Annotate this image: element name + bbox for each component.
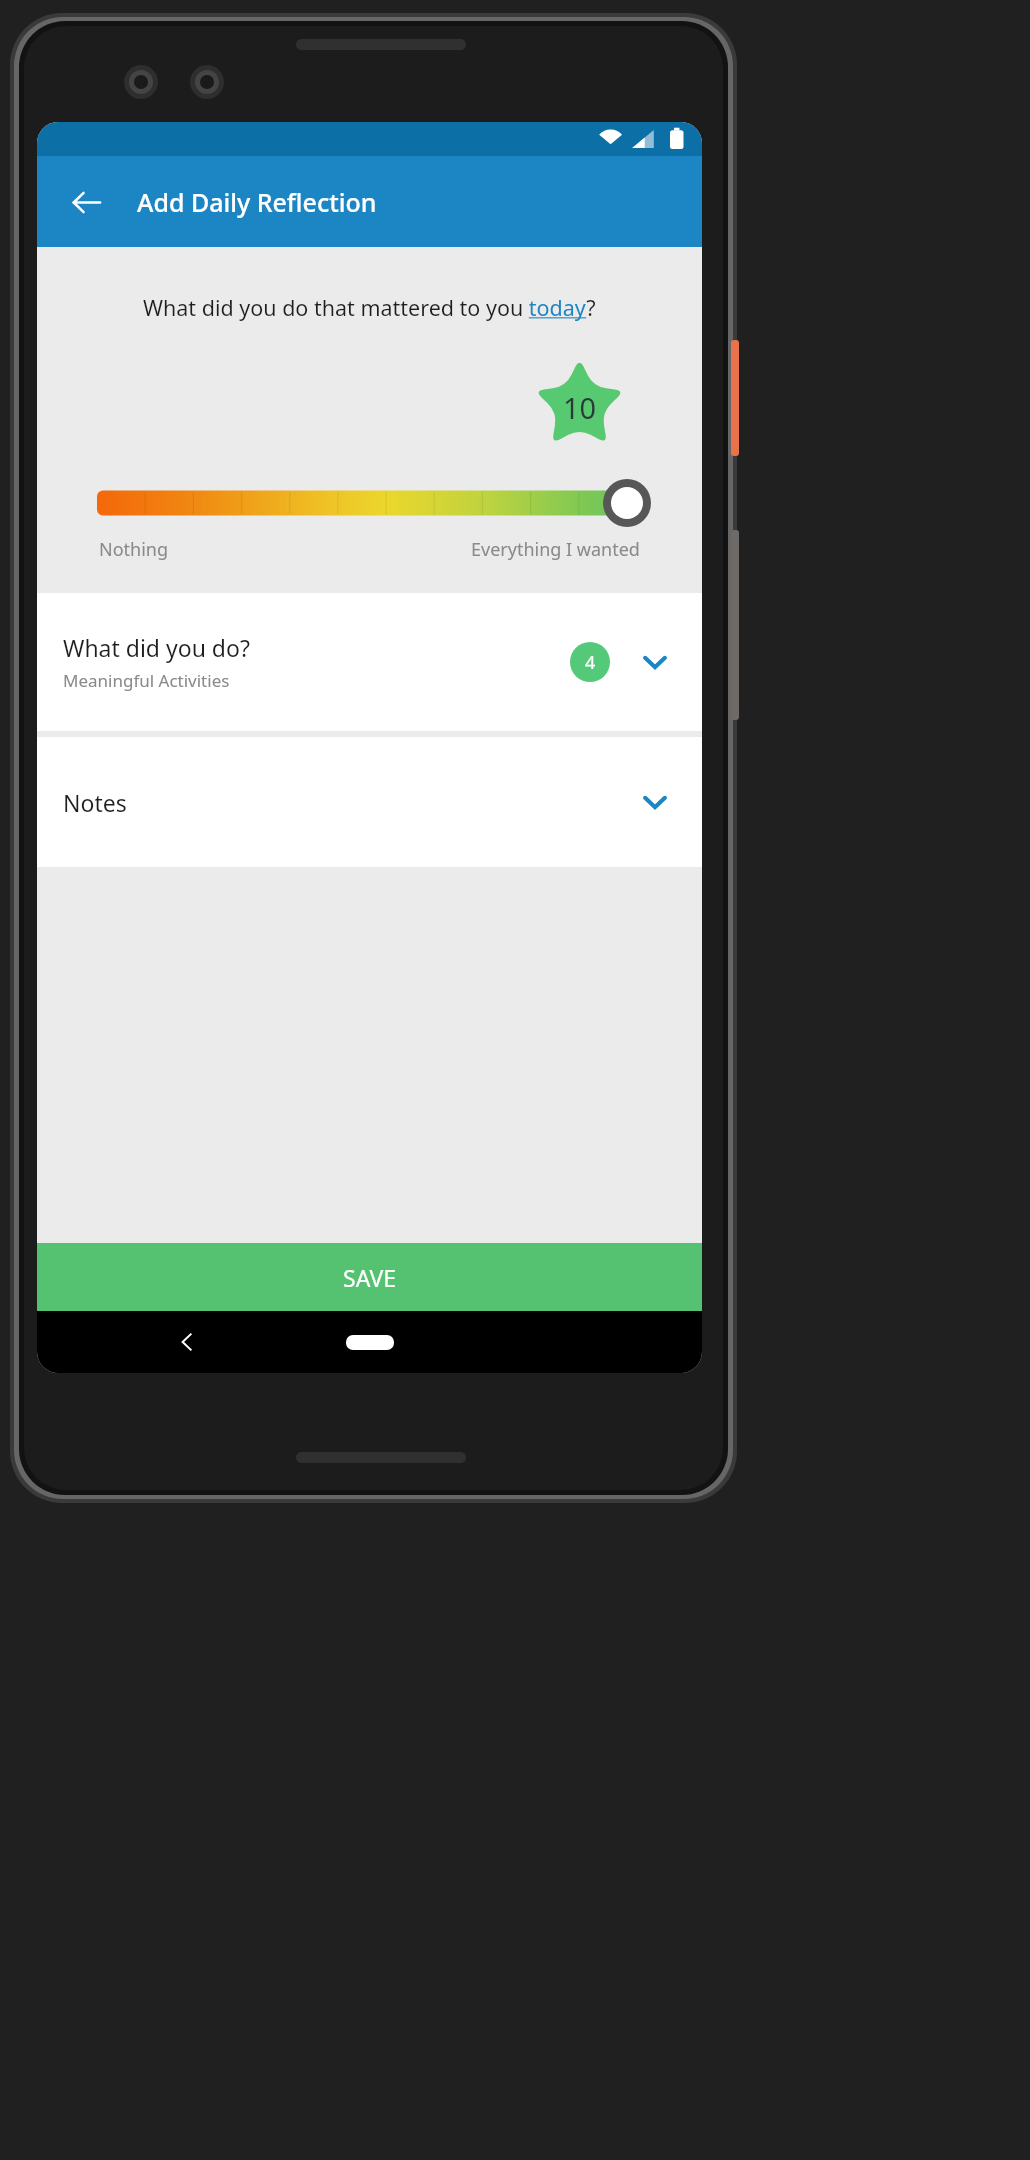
button[interactable]: What did you do? bbox=[37, 593, 702, 731]
staticText: Notes bbox=[63, 787, 634, 818]
button[interactable]: SAVE bbox=[37, 1243, 702, 1311]
button[interactable]: Expand activities bbox=[634, 641, 676, 683]
staticText: SAVE bbox=[343, 1262, 396, 1293]
button[interactable]: Home bbox=[346, 1335, 394, 1350]
button[interactable]: Expand notes bbox=[634, 781, 676, 823]
staticText: Everything I wanted bbox=[471, 537, 640, 562]
button[interactable]: Back bbox=[165, 1320, 209, 1364]
staticText: What did you do? bbox=[63, 632, 250, 663]
staticText: Meaningful Activities bbox=[63, 669, 230, 692]
staticText: 10 bbox=[563, 388, 597, 427]
button[interactable]: Notes bbox=[37, 737, 702, 867]
staticText: Add Daily Reflection bbox=[137, 185, 377, 219]
button[interactable]: Back bbox=[63, 179, 109, 225]
button[interactable]: Rating slider bbox=[97, 477, 655, 529]
staticText: What did you do that mattered to you tod… bbox=[143, 293, 596, 322]
staticText: Nothing bbox=[99, 537, 169, 562]
staticText: 4 bbox=[585, 650, 596, 675]
